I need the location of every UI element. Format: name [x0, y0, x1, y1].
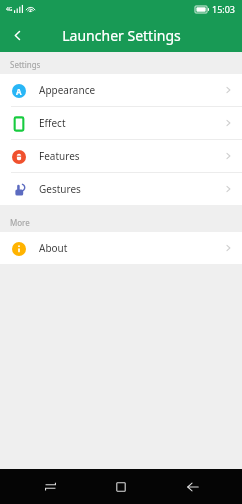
button[interactable]: Features — [0, 140, 242, 172]
staticText: More — [10, 217, 30, 228]
button[interactable]: About — [0, 232, 242, 264]
staticText: 15:03 — [212, 3, 236, 15]
staticText: Settings — [10, 59, 41, 70]
button[interactable]: Back — [171, 469, 215, 504]
button[interactable]: Effect — [0, 107, 242, 139]
staticText: Features — [39, 149, 80, 163]
button[interactable]: Home — [99, 469, 143, 504]
button[interactable]: Recents — [28, 469, 72, 504]
button[interactable]: A — [0, 74, 242, 106]
staticText: Appearance — [39, 83, 96, 97]
staticText: Effect — [39, 116, 66, 130]
button[interactable]: Gestures — [0, 173, 242, 205]
staticText: About — [39, 241, 68, 255]
staticText: A — [16, 86, 22, 97]
staticText: Gestures — [39, 182, 81, 196]
button[interactable]: Back — [0, 18, 34, 52]
staticText: 4G — [6, 6, 13, 13]
staticText: Launcher Settings — [62, 26, 181, 45]
